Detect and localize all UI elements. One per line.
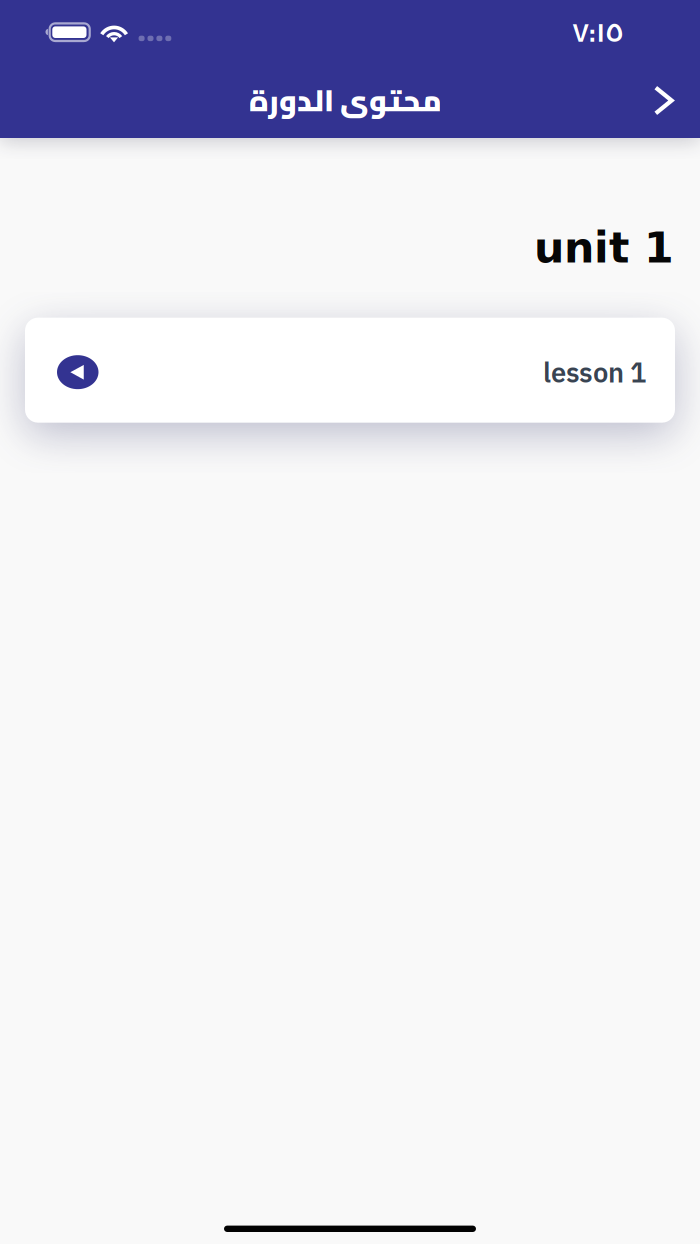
button[interactable]: Back bbox=[640, 67, 688, 123]
staticText: unit 1 bbox=[534, 223, 674, 273]
button[interactable]: lesson 1 bbox=[25, 318, 675, 423]
staticText: ٧:١٥ bbox=[572, 7, 624, 57]
staticText: محتوى الدورة bbox=[248, 73, 441, 128]
staticText: lesson 1 bbox=[543, 354, 646, 390]
